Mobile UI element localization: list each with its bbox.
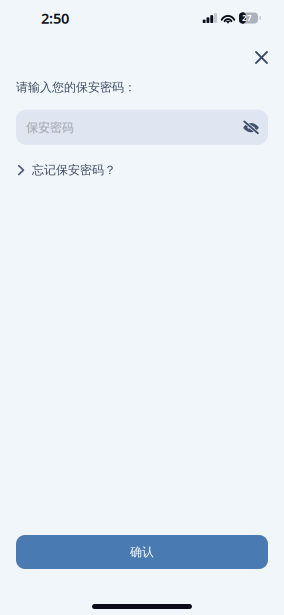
button[interactable]: Close: [249, 45, 274, 70]
staticText: 2:50: [41, 8, 69, 28]
staticText: 忘记保安密码？: [32, 163, 116, 177]
staticText: 确认: [130, 545, 154, 559]
button[interactable]: 确认: [16, 535, 268, 569]
button[interactable]: Show password: [243, 120, 259, 134]
button[interactable]: 忘记保安密码？: [0, 157, 284, 183]
staticText: 27: [242, 13, 252, 23]
staticText: 请输入您的保安密码：: [16, 80, 136, 95]
staticText: 保安密码: [26, 119, 74, 136]
